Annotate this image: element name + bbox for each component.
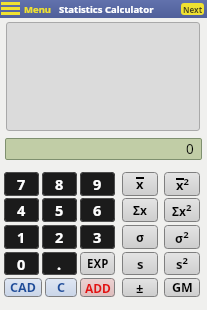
button[interactable]: s: [122, 252, 158, 275]
staticText: Next: [183, 4, 203, 15]
button[interactable]: ±: [122, 278, 158, 297]
staticText: σ: [136, 229, 145, 246]
staticText: Σx: [133, 202, 147, 218]
staticText: 0: [17, 254, 26, 274]
button[interactable]: [1, 2, 20, 15]
button[interactable]: 7: [4, 172, 39, 196]
button[interactable]: ADD: [80, 278, 115, 297]
staticText: 0: [186, 140, 194, 158]
staticText: 8: [55, 174, 64, 194]
button[interactable]: x: [122, 172, 158, 196]
button[interactable]: 4: [4, 198, 39, 222]
staticText: ADD: [85, 280, 111, 296]
button[interactable]: 9: [80, 172, 115, 196]
staticText: C: [57, 279, 66, 296]
staticText: 2: [55, 227, 64, 247]
button[interactable]: 6: [80, 198, 115, 222]
staticText: 3: [93, 227, 102, 247]
staticText: s2: [176, 254, 188, 273]
staticText: 6: [93, 200, 102, 220]
button[interactable]: σ: [122, 225, 158, 249]
button[interactable]: 8: [42, 172, 77, 196]
staticText: x: [136, 175, 144, 193]
staticText: 1: [17, 227, 26, 247]
staticText: 7: [17, 174, 26, 194]
button[interactable]: 5: [42, 198, 77, 222]
button[interactable]: CAD: [4, 278, 42, 297]
staticText: Menu: [24, 3, 51, 16]
button[interactable]: 1: [4, 225, 39, 249]
button[interactable]: x2: [164, 172, 200, 196]
staticText: x2: [176, 175, 189, 194]
staticText: CAD: [10, 279, 36, 296]
button[interactable]: Σx: [122, 198, 158, 222]
button[interactable]: s2: [164, 252, 200, 275]
button[interactable]: σ2: [164, 225, 200, 249]
staticText: EXP: [87, 256, 109, 272]
button[interactable]: EXP: [80, 252, 115, 275]
staticText: Σx2: [172, 201, 192, 220]
staticText: ±: [136, 279, 144, 297]
staticText: s: [137, 255, 144, 273]
staticText: σ2: [175, 228, 189, 247]
staticText: .: [57, 254, 62, 274]
staticText: 9: [93, 174, 102, 194]
button[interactable]: GM: [164, 278, 200, 297]
staticText: GM: [172, 279, 193, 296]
button[interactable]: .: [42, 252, 77, 275]
button[interactable]: 2: [42, 225, 77, 249]
button[interactable]: Σx2: [164, 198, 200, 222]
button[interactable]: C: [45, 278, 77, 297]
button[interactable]: 0: [4, 252, 39, 275]
staticText: Statistics Calculator: [59, 3, 154, 16]
staticText: 4: [17, 200, 26, 220]
button[interactable]: 3: [80, 225, 115, 249]
staticText: 5: [55, 200, 64, 220]
button[interactable]: Next: [181, 3, 204, 15]
